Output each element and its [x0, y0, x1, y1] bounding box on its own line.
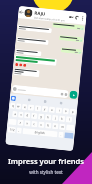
button[interactable]: h: [45, 114, 51, 121]
button[interactable]: [61, 47, 82, 54]
staticText: w: [17, 104, 20, 109]
button[interactable]: English: [22, 128, 58, 137]
button[interactable]: b: [45, 122, 52, 129]
button[interactable]: .: [58, 131, 64, 138]
staticText: d: [26, 113, 28, 117]
button[interactable]: [66, 124, 75, 131]
staticText: o: [65, 109, 67, 113]
button[interactable]: v: [38, 121, 45, 128]
button[interactable]: Emoji keyboard: [11, 96, 16, 101]
button[interactable]: m: [59, 124, 66, 130]
button[interactable]: ?12: [7, 126, 16, 133]
button[interactable]: l: [66, 116, 72, 123]
button[interactable]: f: [31, 113, 37, 119]
button[interactable]: a: [12, 111, 18, 117]
staticText: last seen today at 10:31 am: [34, 15, 65, 22]
staticText: c: [33, 122, 36, 126]
button[interactable]: q: [10, 103, 15, 109]
staticText: g: [40, 115, 42, 119]
staticText: s: [20, 113, 22, 117]
button[interactable]: Back: [18, 6, 25, 18]
staticText: a: [14, 112, 16, 116]
staticText: q: [12, 104, 14, 108]
staticText: l: [69, 117, 70, 122]
button[interactable]: g: [38, 113, 44, 120]
staticText: .: [60, 133, 62, 137]
button[interactable]: n: [52, 123, 59, 129]
button[interactable]: s: [18, 111, 24, 118]
staticText: e: [24, 105, 26, 109]
button[interactable]: o: [63, 108, 69, 114]
staticText: ?12: [9, 128, 15, 132]
button[interactable]: u: [49, 106, 55, 113]
staticText: ,: [18, 129, 20, 133]
staticText: Impress your friends: [8, 156, 84, 166]
staticText: p: [72, 110, 74, 114]
staticText: b: [47, 123, 50, 128]
button[interactable]: c: [31, 121, 38, 127]
button[interactable]: r: [28, 104, 34, 111]
button[interactable]: [11, 85, 69, 98]
button[interactable]: Call: [74, 11, 81, 24]
button[interactable]: More options: [80, 12, 86, 24]
staticText: f: [33, 114, 35, 118]
button[interactable]: [52, 22, 84, 31]
button[interactable]: d: [24, 112, 31, 119]
staticText: n: [54, 124, 56, 128]
button[interactable]: [15, 49, 42, 56]
staticText: English: [34, 130, 46, 135]
button[interactable]: [59, 35, 83, 42]
staticText: r: [30, 106, 32, 110]
staticText: j: [55, 116, 56, 120]
staticText: RAJU: [34, 9, 46, 17]
button[interactable]: Video call: [68, 11, 75, 23]
staticText: k: [61, 117, 63, 121]
button[interactable]: t: [35, 105, 41, 112]
button[interactable]: w: [16, 103, 21, 110]
staticText: z: [19, 121, 22, 125]
button[interactable]: y: [42, 106, 48, 112]
button[interactable]: [14, 55, 57, 66]
staticText: t: [37, 106, 39, 110]
staticText: h: [47, 115, 49, 119]
staticText: u: [51, 108, 53, 112]
button[interactable]: j: [52, 115, 58, 121]
button[interactable]: i: [56, 107, 62, 114]
button[interactable]: ,: [16, 127, 22, 134]
button[interactable]: e: [22, 104, 27, 110]
button[interactable]: x: [24, 120, 31, 127]
button[interactable]: [8, 118, 17, 125]
staticText: y: [44, 107, 46, 111]
staticText: v: [40, 123, 43, 127]
button[interactable]: [16, 37, 49, 45]
button[interactable]: [18, 25, 52, 33]
button[interactable]: p: [69, 108, 76, 115]
button[interactable]: Enter: [64, 132, 74, 139]
button[interactable]: z: [17, 119, 24, 126]
staticText: i: [59, 108, 60, 112]
button[interactable]: [13, 68, 40, 77]
button[interactable]: k: [59, 115, 65, 122]
staticText: m: [61, 125, 64, 129]
staticText: x: [26, 121, 29, 125]
button[interactable]: Send: [69, 90, 78, 99]
staticText: with stylish text: [29, 169, 63, 175]
